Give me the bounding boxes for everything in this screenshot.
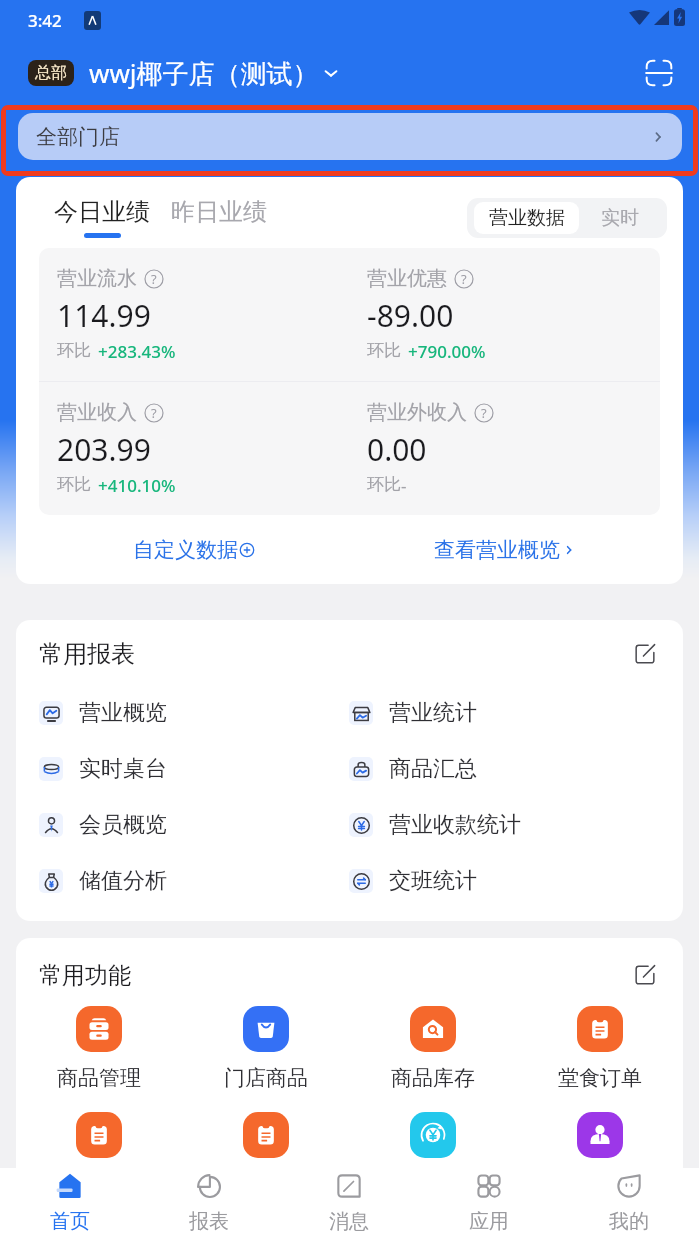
staticText: +283.43% — [98, 340, 176, 363]
staticText: 报表 — [189, 1209, 229, 1234]
button[interactable]: 报表 — [139, 1168, 279, 1242]
button[interactable]: 首页 — [0, 1168, 139, 1242]
button[interactable]: 会员概览 — [16, 797, 349, 853]
staticText: 营业收入 — [57, 400, 137, 425]
staticText: 商品汇总 — [389, 755, 477, 783]
staticText: 营业概览 — [79, 699, 167, 727]
button[interactable]: Edit reports — [630, 639, 660, 669]
staticText: 交班统计 — [389, 867, 477, 895]
button[interactable]: Edit functions — [630, 960, 660, 990]
button[interactable]: 实时 — [579, 202, 660, 234]
button[interactable]: Scan — [637, 51, 681, 95]
button[interactable]: 消息 — [279, 1168, 419, 1242]
staticText: 门店商品 — [224, 1065, 308, 1091]
button[interactable]: 收银对账 — [349, 1112, 516, 1196]
staticText: 储值分析 — [79, 867, 167, 895]
staticText: 商品管理 — [57, 1065, 141, 1091]
staticText: - — [401, 474, 407, 497]
button[interactable]: 堂食订单 — [516, 1006, 683, 1091]
staticText: 我的 — [609, 1209, 649, 1234]
staticText: 环比 — [57, 474, 91, 495]
button[interactable]: 昨日业绩 — [171, 197, 267, 227]
button[interactable]: 应用 — [419, 1168, 559, 1242]
button[interactable]: 今日业绩 — [54, 197, 150, 238]
staticText: 114.99 — [57, 295, 151, 336]
staticText: 营业流水 — [57, 266, 137, 291]
staticText: 会员概览 — [79, 811, 167, 839]
button[interactable]: 订单管理 — [16, 1112, 182, 1196]
staticText: ? — [151, 404, 157, 422]
button[interactable]: 自定义数据 — [125, 529, 263, 571]
staticText: 营业优惠 — [367, 266, 447, 291]
staticText: ? — [151, 270, 157, 288]
staticText: 常用报表 — [39, 639, 135, 669]
button[interactable]: 实时桌台 — [16, 741, 349, 797]
staticText: 会员管理 — [558, 1170, 642, 1196]
staticText: 营业统计 — [389, 699, 477, 727]
staticText: 商品库存 — [391, 1065, 475, 1091]
button[interactable]: 查看营业概览 — [426, 529, 584, 571]
button[interactable]: 商品汇总 — [349, 741, 683, 797]
staticText: 3:42 — [28, 9, 62, 32]
button[interactable]: 商品库存 — [349, 1006, 516, 1091]
staticText: +790.00% — [408, 340, 486, 363]
button[interactable]: 会员管理 — [516, 1112, 683, 1196]
staticText: 查看营业概览 — [434, 537, 560, 563]
staticText: ? — [481, 404, 487, 422]
button[interactable]: 全部门店 — [18, 113, 682, 160]
staticText: 全部门店 — [36, 124, 120, 150]
button[interactable]: 交班统计 — [349, 853, 683, 909]
button[interactable]: 退货订单 — [182, 1112, 349, 1196]
staticText: -89.00 — [367, 295, 454, 336]
staticText: 环比 — [57, 340, 91, 361]
staticText: 实时桌台 — [79, 755, 167, 783]
staticText: 营业收款统计 — [389, 811, 521, 839]
staticText: 自定义数据 — [133, 537, 238, 563]
button[interactable]: 营业数据 — [474, 202, 579, 234]
staticText: 常用功能 — [39, 961, 131, 990]
staticText: 203.99 — [57, 429, 151, 470]
staticText: 环比 — [367, 340, 401, 361]
staticText: 首页 — [50, 1209, 90, 1234]
button[interactable]: 门店商品 — [182, 1006, 349, 1091]
staticText: 实时 — [601, 206, 639, 230]
staticText: 总部 — [35, 63, 67, 83]
button[interactable]: 我的 — [559, 1168, 699, 1242]
staticText: 环比 — [367, 474, 401, 495]
staticText: 订单管理 — [57, 1170, 141, 1196]
staticText: 应用 — [469, 1209, 509, 1234]
staticText: 堂食订单 — [558, 1065, 642, 1091]
button[interactable]: 营业统计 — [349, 685, 683, 741]
staticText: 消息 — [329, 1209, 369, 1234]
staticText: 昨日业绩 — [171, 197, 267, 227]
button[interactable]: 储值分析 — [16, 853, 349, 909]
button[interactable]: 商品管理 — [16, 1006, 182, 1091]
staticText: 0.00 — [367, 429, 427, 470]
staticText: 营业数据 — [489, 206, 565, 230]
button[interactable]: 营业概览 — [16, 685, 349, 741]
staticText: 今日业绩 — [54, 197, 150, 227]
button[interactable]: 营业收款统计 — [349, 797, 683, 853]
button[interactable]: 总部 — [28, 55, 341, 91]
staticText: +410.10% — [98, 474, 176, 497]
staticText: ? — [461, 270, 467, 288]
staticText: 营业外收入 — [367, 400, 467, 425]
staticText: wwj椰子店（测试） — [89, 55, 319, 91]
